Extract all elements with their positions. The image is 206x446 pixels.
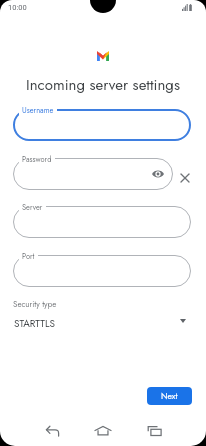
staticText: Security type [13,298,57,310]
staticText: Username [22,105,54,116]
button[interactable] [13,109,191,141]
button[interactable] [13,158,173,190]
button[interactable]: Back [37,416,67,446]
staticText: Server [22,202,43,213]
staticText: Incoming server settings [0,74,206,96]
button[interactable]: Recent apps [139,416,169,446]
button[interactable]: Home [88,416,118,446]
button[interactable]: Show password [150,166,166,182]
staticText: Password [22,154,52,165]
staticText: STARTTLS [14,316,55,330]
button[interactable]: Security type [0,296,206,330]
staticText: Next [161,390,178,402]
staticText: 10:00 [8,3,27,12]
button[interactable]: Next [147,387,192,405]
button[interactable] [13,206,191,238]
staticText: Port [22,251,35,262]
button[interactable] [13,255,191,287]
button[interactable]: Clear password [176,169,194,187]
